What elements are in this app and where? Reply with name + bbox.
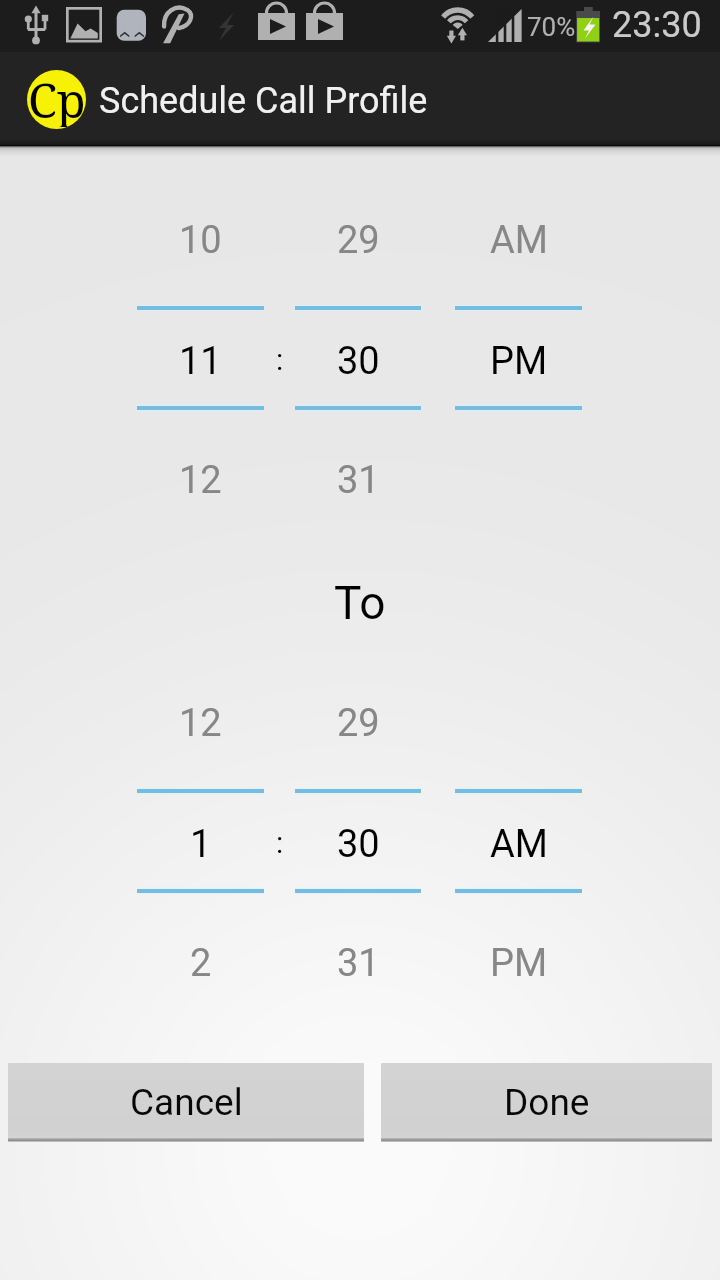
staticText: PM xyxy=(490,941,548,986)
staticText: Done xyxy=(504,1081,590,1124)
button[interactable]: Done xyxy=(381,1063,712,1142)
button[interactable]: 30 xyxy=(295,331,421,391)
staticText: 30 xyxy=(337,339,380,384)
button[interactable]: PM xyxy=(455,331,582,391)
staticText: 12 xyxy=(179,701,222,746)
button[interactable]: 11 xyxy=(137,331,264,391)
staticText: : xyxy=(276,342,284,377)
staticText: Cp xyxy=(28,70,86,127)
button[interactable]: 2 xyxy=(137,933,264,993)
staticText: 29 xyxy=(337,701,380,746)
staticText: 11 xyxy=(179,339,222,384)
staticText: 12 xyxy=(179,458,222,503)
staticText: AM xyxy=(490,822,548,867)
staticText: 31 xyxy=(337,458,380,503)
button[interactable]: 30 xyxy=(295,814,421,874)
button[interactable]: 12 xyxy=(137,693,264,753)
staticText: 2 xyxy=(190,941,212,986)
staticText: To xyxy=(334,576,386,630)
staticText: AM xyxy=(490,218,548,263)
button[interactable]: 10 xyxy=(137,210,264,270)
button[interactable]: AM xyxy=(455,814,582,874)
staticText: 1 xyxy=(190,822,212,867)
button[interactable]: 31 xyxy=(295,450,421,510)
staticText: 70% xyxy=(527,12,576,42)
button[interactable]: 31 xyxy=(295,933,421,993)
staticText: Schedule Call Profile xyxy=(99,80,428,122)
button[interactable]: AM xyxy=(455,210,582,270)
button[interactable]: 29 xyxy=(295,210,421,270)
staticText: 29 xyxy=(337,218,380,263)
button[interactable]: Call Profile home xyxy=(27,70,86,129)
staticText: Cancel xyxy=(130,1081,243,1124)
staticText: 10 xyxy=(179,218,222,263)
button[interactable]: 12 xyxy=(137,450,264,510)
staticText: : xyxy=(276,825,284,860)
button[interactable]: Cancel xyxy=(8,1063,364,1142)
button[interactable]: 1 xyxy=(137,814,264,874)
button[interactable]: 29 xyxy=(295,693,421,753)
staticText: 23:30 xyxy=(612,4,702,46)
staticText: 31 xyxy=(337,941,380,986)
button[interactable]: PM xyxy=(455,933,582,993)
staticText: PM xyxy=(490,339,548,384)
staticText: 30 xyxy=(337,822,380,867)
